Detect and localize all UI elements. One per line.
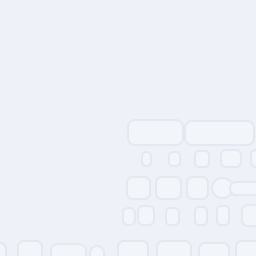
button[interactable]: Key 10 xyxy=(217,206,229,225)
button[interactable]: Key 9 xyxy=(195,207,207,225)
button[interactable]: Tile 1 xyxy=(127,177,150,199)
button[interactable]: Key 18 xyxy=(199,243,229,256)
button[interactable]: Key 15 xyxy=(90,246,104,256)
button[interactable]: Tile 3 xyxy=(187,177,208,199)
button[interactable]: Wide bar xyxy=(230,182,256,195)
button[interactable]: Key 3 xyxy=(195,151,209,167)
button[interactable]: Key 19 xyxy=(236,241,256,256)
button[interactable]: Card two xyxy=(185,121,254,145)
button[interactable]: Key 4 xyxy=(221,150,241,167)
button[interactable]: Key 16 xyxy=(118,241,148,256)
button[interactable]: Tile 2 xyxy=(156,177,181,199)
button[interactable]: Card one xyxy=(128,120,183,145)
button[interactable]: Key 12 xyxy=(0,243,6,256)
button[interactable]: Key 6 xyxy=(123,208,135,225)
button[interactable]: Key 5 xyxy=(251,150,256,167)
button[interactable]: Key 17 xyxy=(157,241,191,256)
button[interactable]: Round key xyxy=(212,178,233,198)
button[interactable]: Key 14 xyxy=(51,244,86,256)
button[interactable]: Key 7 xyxy=(138,206,154,225)
button[interactable]: Key 13 xyxy=(18,241,42,256)
button[interactable]: Key 1 xyxy=(142,152,151,166)
button[interactable]: Key 8 xyxy=(166,208,179,225)
button[interactable]: Key 11 xyxy=(242,205,256,226)
button[interactable]: Key 2 xyxy=(169,152,180,166)
